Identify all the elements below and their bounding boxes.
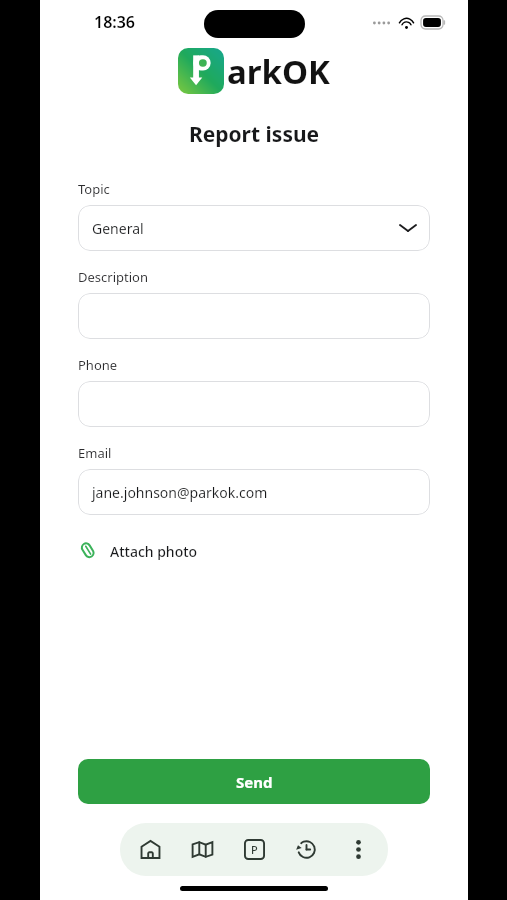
- staticText: Description: [78, 268, 148, 286]
- button[interactable]: jane.johnson@parkok.com: [78, 469, 430, 515]
- button[interactable]: Send: [78, 759, 430, 804]
- button[interactable]: Home: [128, 823, 172, 876]
- staticText: Phone: [78, 356, 118, 374]
- staticText: arkOK: [227, 49, 330, 94]
- staticText: 18:36: [94, 11, 136, 33]
- staticText: Send: [236, 772, 273, 792]
- button[interactable]: More: [336, 823, 380, 876]
- button[interactable]: Parking: [232, 823, 276, 876]
- button[interactable]: Attach photo: [78, 537, 198, 566]
- staticText: Topic: [78, 180, 110, 198]
- staticText: Email: [78, 444, 112, 462]
- button[interactable]: Map: [180, 823, 224, 876]
- staticText: General: [92, 219, 144, 238]
- button[interactable]: General: [78, 205, 430, 251]
- staticText: Attach photo: [110, 542, 198, 561]
- staticText: P: [251, 842, 258, 857]
- staticText: jane.johnson@parkok.com: [92, 483, 268, 502]
- button[interactable]: History: [284, 823, 328, 876]
- button[interactable]: [78, 293, 430, 339]
- staticText: Report issue: [40, 120, 468, 149]
- button[interactable]: [78, 381, 430, 427]
